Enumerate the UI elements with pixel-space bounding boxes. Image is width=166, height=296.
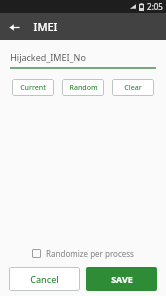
staticText: IMEI [33,19,58,34]
staticText: Randomize per process [46,248,134,259]
button[interactable]: Randomize per process [12,243,154,263]
button[interactable]: Clear [112,79,154,96]
staticText: Clear [124,83,142,93]
staticText: Current [20,83,46,93]
button[interactable]: Random [62,79,104,96]
staticText: Random [69,83,98,93]
button[interactable]: SAVE [86,267,157,291]
staticText: 2:05 [147,1,163,12]
staticText: Cancel [30,273,59,285]
button[interactable]: Hijacked_IMEI_No [10,48,156,65]
button[interactable]: Current [12,79,54,96]
button[interactable]: Cancel [9,267,80,291]
staticText: SAVE [111,273,133,285]
staticText: Hijacked_IMEI_No [10,51,86,63]
button[interactable]: Back [4,17,24,37]
